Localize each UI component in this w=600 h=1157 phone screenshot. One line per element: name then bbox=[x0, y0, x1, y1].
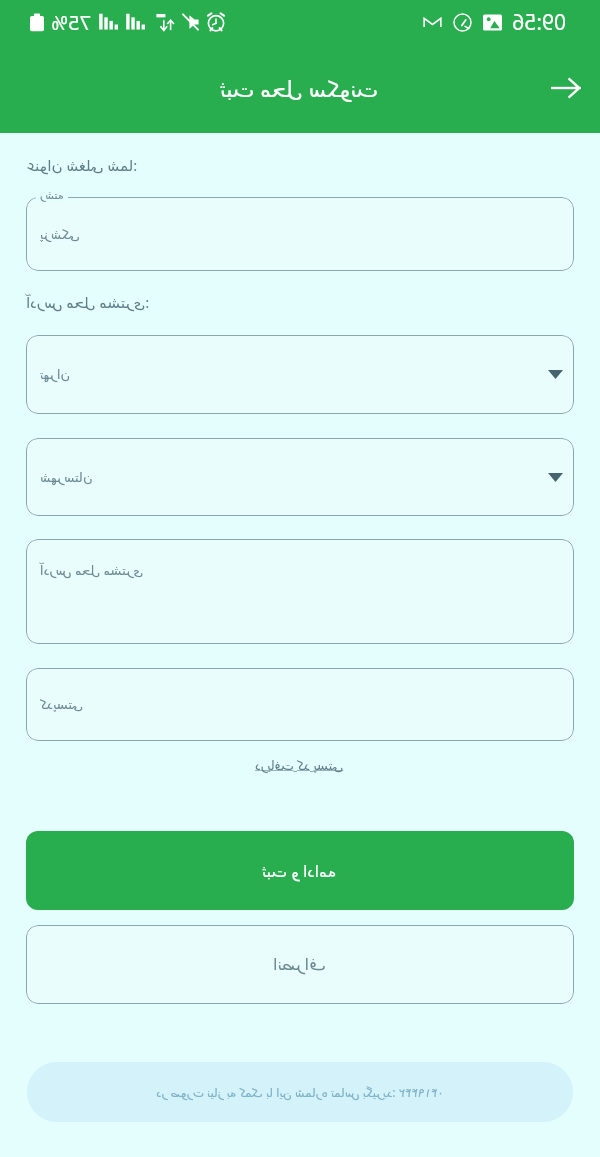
staticText: ثبت و ادامه bbox=[262, 860, 337, 882]
staticText: ثبت محل سکونت bbox=[220, 73, 379, 103]
staticText: 09:56 bbox=[512, 8, 566, 37]
button[interactable]: تهران bbox=[26, 335, 574, 414]
button[interactable]: کدپستی bbox=[26, 668, 574, 741]
button[interactable]: دریافت کد پستی bbox=[251, 752, 348, 778]
staticText: آدرس محل مشتری bbox=[40, 561, 144, 579]
button[interactable]: ثبت و ادامه bbox=[26, 831, 574, 910]
staticText: تهران bbox=[40, 367, 70, 382]
button[interactable]: آدرس محل مشتری bbox=[26, 539, 574, 644]
button[interactable]: Back bbox=[543, 64, 591, 112]
button[interactable]: شهرستان bbox=[26, 438, 574, 516]
staticText: پزشکی bbox=[40, 227, 80, 242]
staticText: در صورت نیاز به کمک با این شماره تماس بگ… bbox=[156, 1084, 444, 1100]
staticText: عنوان شغلی شما: bbox=[26, 155, 138, 175]
staticText: انصراف bbox=[273, 955, 326, 974]
staticText: شهرستان bbox=[40, 470, 93, 485]
button[interactable]: انصراف bbox=[26, 925, 574, 1004]
staticText: 75% bbox=[51, 9, 91, 36]
staticText: کدپستی bbox=[40, 697, 83, 712]
staticText: رشته bbox=[40, 189, 64, 202]
staticText: آدرس محل مشتری: bbox=[26, 292, 150, 312]
button[interactable] bbox=[26, 197, 574, 271]
